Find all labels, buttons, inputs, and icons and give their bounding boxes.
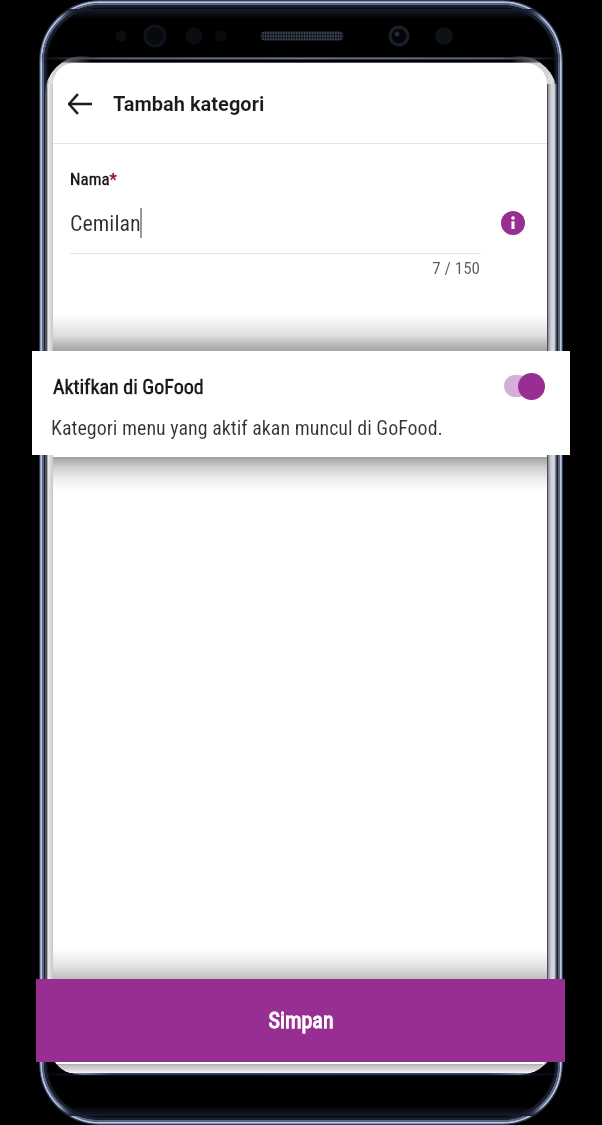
staticText: Cemilan <box>70 211 141 237</box>
staticText: Nama* <box>70 169 117 189</box>
button[interactable]: Simpan <box>36 979 565 1062</box>
staticText: Aktifkan di GoFood <box>53 375 204 398</box>
staticText: 7 / 150 <box>380 258 480 278</box>
staticText: Tambah kategori <box>113 92 265 115</box>
button[interactable]: Back <box>58 82 102 126</box>
button[interactable]: Aktifkan di GoFood <box>498 367 554 405</box>
staticText: Kategori menu yang aktif akan muncul di … <box>51 416 443 439</box>
button[interactable]: Info <box>501 211 525 235</box>
staticText: Simpan <box>268 1008 334 1034</box>
button[interactable]: Aktifkan di GoFood <box>32 351 570 455</box>
